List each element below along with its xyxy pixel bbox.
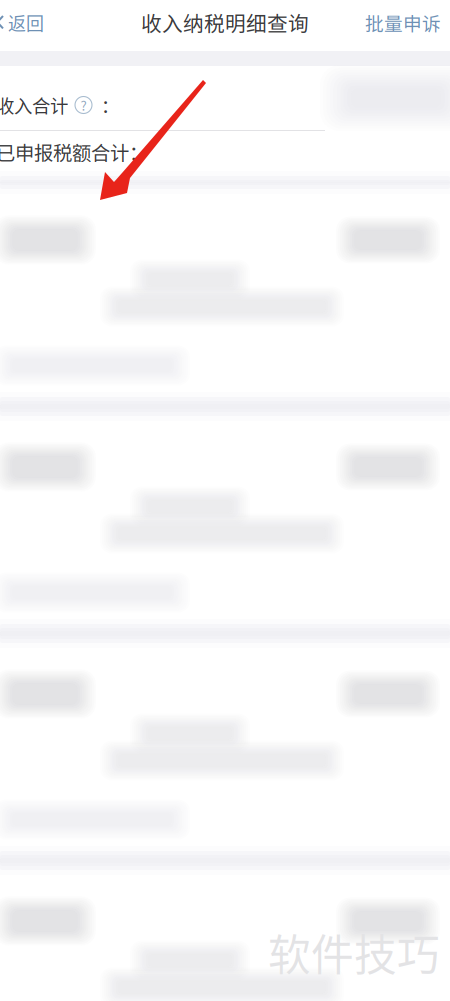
button[interactable]: 批量申诉	[365, 4, 441, 47]
button[interactable]: 返回	[0, 4, 48, 47]
staticText: 返回	[8, 9, 44, 36]
staticText: 已申报税额合计：	[0, 138, 148, 166]
staticText: 收入合计	[0, 92, 68, 118]
button[interactable]: 收入纳税明细记录	[0, 875, 450, 1001]
button[interactable]: 收入纳税明细记录	[0, 421, 450, 619]
button[interactable]: 收入纳税明细记录	[0, 648, 450, 846]
staticText: 批量申诉	[365, 9, 441, 36]
staticText: 收入纳税明细查询	[141, 7, 309, 37]
button[interactable]: 收入纳税明细记录	[0, 194, 450, 392]
staticText: ?	[80, 95, 86, 115]
staticText: 软件技巧	[268, 921, 440, 983]
staticText: ：	[101, 92, 119, 118]
